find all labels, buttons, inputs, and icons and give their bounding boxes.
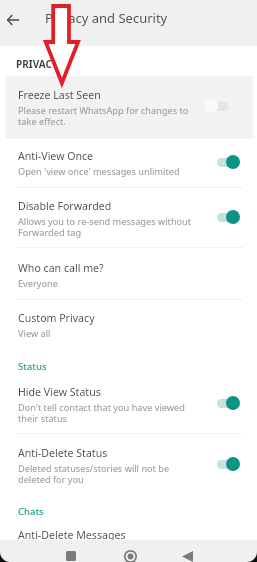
staticText: Don't tell contact that you have viewed … [18, 401, 192, 425]
button[interactable]: Toggle [210, 208, 240, 226]
button[interactable]: Who can call me? [0, 248, 257, 299]
staticText: Anti-Delete Messages [18, 528, 126, 542]
staticText: Who can call me? [18, 261, 104, 275]
button[interactable]: Back [177, 546, 197, 562]
button[interactable]: Disable Forwarded [0, 188, 257, 247]
staticText: Chats [18, 505, 44, 518]
staticText: Allows you to re-send messages without F… [18, 215, 192, 239]
button[interactable]: Toggle [210, 394, 240, 412]
staticText: PRIVACY [16, 57, 59, 71]
staticText: Status [18, 360, 47, 373]
button[interactable]: Toggle [204, 97, 234, 115]
button[interactable]: Freeze Last Seen [5, 76, 253, 139]
button[interactable]: Toggle [210, 455, 240, 473]
staticText: Anti-Delete Status [18, 446, 108, 460]
staticText: Open 'view once' messages unlimited [18, 165, 180, 178]
staticText: Privacy and Security [45, 9, 168, 27]
staticText: Deleted statuses/stories will not be del… [18, 462, 192, 486]
staticText: Please restart WhatsApp for changes to t… [18, 104, 204, 128]
staticText: Hide View Status [18, 385, 101, 399]
staticText: Disable Forwarded [18, 199, 112, 213]
staticText: View all [18, 327, 51, 340]
button[interactable]: Custom Privacy [0, 300, 257, 349]
staticText: Custom Privacy [18, 311, 95, 325]
staticText: Freeze Last Seen [18, 88, 101, 102]
button[interactable]: Anti-Delete Status [0, 434, 257, 494]
button[interactable]: Back [0, 7, 25, 32]
button[interactable]: Hide View Status [0, 385, 257, 433]
button[interactable]: Recents [61, 546, 81, 562]
button[interactable]: Anti-View Once [0, 149, 257, 187]
staticText: Everyone [18, 277, 58, 290]
staticText: Anti-View Once [18, 149, 94, 163]
button[interactable]: Toggle [210, 153, 240, 171]
button[interactable]: Home [120, 546, 140, 562]
